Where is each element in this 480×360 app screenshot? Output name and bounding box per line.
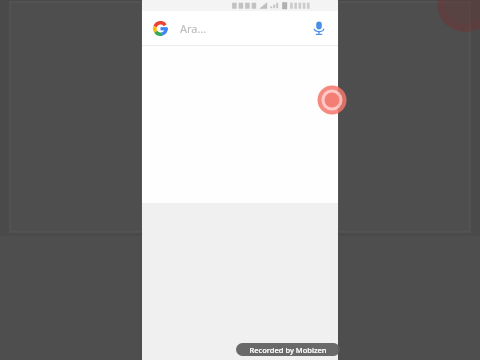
staticText: Ara… bbox=[180, 21, 308, 36]
staticText: Recorded by Mobizen bbox=[249, 345, 327, 355]
button[interactable]: Voice search bbox=[308, 17, 330, 39]
button[interactable]: Google bbox=[142, 11, 338, 45]
button[interactable]: Google bbox=[150, 18, 170, 38]
